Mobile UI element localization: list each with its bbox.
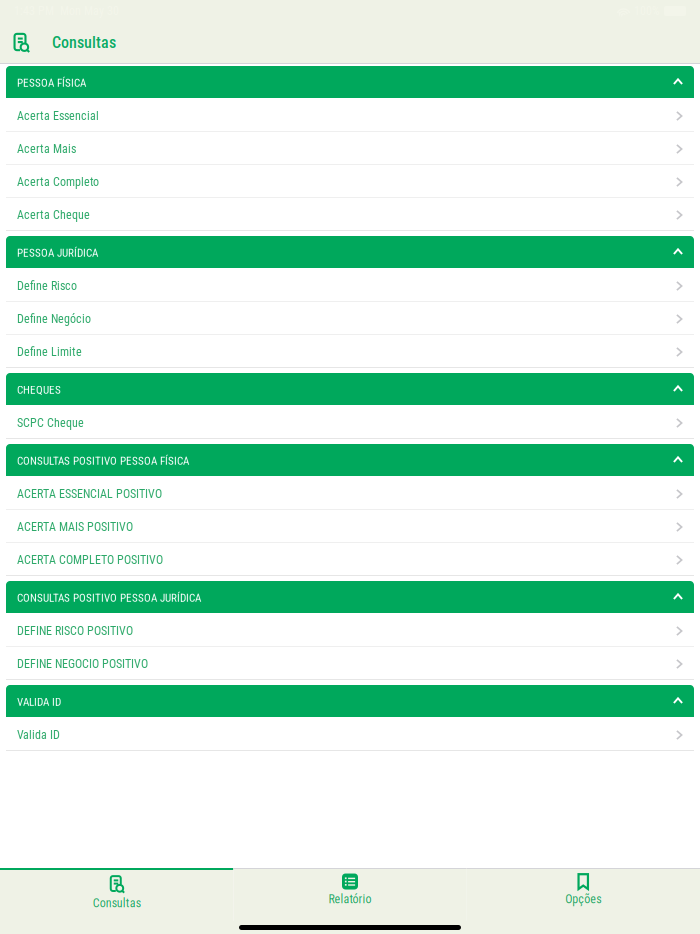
button[interactable]: CONSULTAS POSITIVO PESSOA JURÍDICA bbox=[6, 581, 694, 613]
button[interactable]: Acerta Completo bbox=[6, 164, 694, 197]
staticText: Consultas bbox=[52, 33, 116, 52]
staticText: ACERTA ESSENCIAL POSITIVO bbox=[17, 487, 162, 501]
button[interactable]: PESSOA FÍSICA bbox=[6, 66, 694, 98]
staticText: VALIDA ID bbox=[17, 695, 61, 708]
staticText: Define Negócio bbox=[17, 312, 91, 326]
button[interactable]: CONSULTAS POSITIVO PESSOA FÍSICA bbox=[6, 444, 694, 476]
staticText: PESSOA FÍSICA bbox=[17, 76, 86, 89]
button[interactable]: Opções bbox=[467, 868, 700, 921]
button[interactable]: PESSOA JURÍDICA bbox=[6, 236, 694, 268]
staticText: Acerta Mais bbox=[17, 142, 76, 156]
button[interactable]: VALIDA ID bbox=[6, 685, 694, 717]
staticText: Acerta Completo bbox=[17, 175, 99, 189]
button[interactable]: DEFINE RISCO POSITIVO bbox=[6, 613, 694, 646]
button[interactable]: ACERTA ESSENCIAL POSITIVO bbox=[6, 476, 694, 509]
button[interactable]: Acerta Cheque bbox=[6, 197, 694, 230]
button[interactable]: Valida ID bbox=[6, 717, 694, 750]
staticText: PESSOA JURÍDICA bbox=[17, 246, 98, 259]
button[interactable]: Consultas bbox=[6, 25, 36, 59]
staticText: Acerta Cheque bbox=[17, 208, 90, 222]
button[interactable]: ACERTA COMPLETO POSITIVO bbox=[6, 542, 694, 575]
button[interactable]: DEFINE NEGOCIO POSITIVO bbox=[6, 646, 694, 679]
button[interactable]: Define Negócio bbox=[6, 301, 694, 334]
staticText: CONSULTAS POSITIVO PESSOA JURÍDICA bbox=[17, 591, 201, 604]
staticText: Relatório bbox=[328, 892, 371, 906]
button[interactable]: Define Risco bbox=[6, 268, 694, 301]
button[interactable]: Acerta Mais bbox=[6, 131, 694, 164]
staticText: DEFINE RISCO POSITIVO bbox=[17, 624, 133, 638]
staticText: SCPC Cheque bbox=[17, 416, 84, 430]
button[interactable]: SCPC Cheque bbox=[6, 405, 694, 438]
staticText: Acerta Essencial bbox=[17, 109, 99, 123]
staticText: CONSULTAS POSITIVO PESSOA FÍSICA bbox=[17, 454, 189, 467]
button[interactable]: Relatório bbox=[233, 868, 467, 921]
staticText: Valida ID bbox=[17, 728, 60, 742]
staticText: DEFINE NEGOCIO POSITIVO bbox=[17, 657, 148, 671]
staticText: CHEQUES bbox=[17, 383, 61, 396]
button[interactable]: ACERTA MAIS POSITIVO bbox=[6, 509, 694, 542]
button[interactable]: Define Limite bbox=[6, 334, 694, 367]
staticText: ACERTA COMPLETO POSITIVO bbox=[17, 553, 163, 567]
staticText: Define Limite bbox=[17, 345, 82, 359]
staticText: Opções bbox=[565, 892, 601, 906]
button[interactable]: Consultas bbox=[0, 868, 233, 921]
staticText: Define Risco bbox=[17, 279, 77, 293]
staticText: Consultas bbox=[93, 896, 141, 910]
button[interactable]: CHEQUES bbox=[6, 373, 694, 405]
staticText: ACERTA MAIS POSITIVO bbox=[17, 520, 133, 534]
button[interactable]: Acerta Essencial bbox=[6, 98, 694, 131]
